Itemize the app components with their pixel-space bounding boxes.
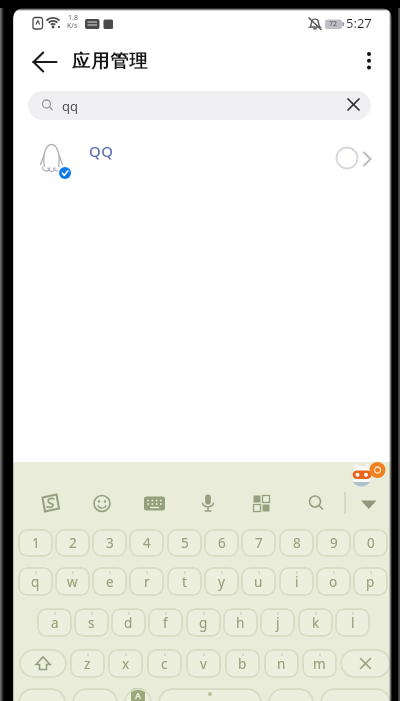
staticText: i bbox=[295, 573, 299, 591]
staticText: 5 bbox=[181, 534, 189, 552]
staticText: v bbox=[200, 655, 207, 673]
button[interactable]: k bbox=[298, 608, 333, 637]
button[interactable]: j bbox=[260, 608, 295, 637]
button[interactable] bbox=[26, 44, 64, 80]
button[interactable]: p bbox=[353, 567, 388, 596]
button[interactable]: t bbox=[167, 567, 202, 596]
button[interactable]: 9 bbox=[316, 529, 351, 557]
button[interactable]: v bbox=[186, 649, 221, 678]
staticText: A bbox=[135, 689, 142, 701]
staticText: 1.8 bbox=[68, 13, 78, 23]
staticText: j bbox=[276, 614, 280, 632]
staticText: e bbox=[106, 573, 114, 591]
button[interactable]: 6 bbox=[204, 529, 239, 557]
button[interactable]: qq bbox=[28, 91, 371, 120]
button[interactable] bbox=[72, 688, 118, 701]
button[interactable] bbox=[35, 490, 63, 517]
staticText: k bbox=[312, 614, 320, 632]
staticText: K/s bbox=[67, 21, 78, 31]
button[interactable]: 2 bbox=[55, 529, 90, 557]
button[interactable]: m bbox=[302, 649, 337, 678]
button[interactable]: a bbox=[37, 608, 72, 637]
button[interactable]: n bbox=[264, 649, 299, 678]
button[interactable]: l bbox=[335, 608, 370, 637]
staticText: l bbox=[351, 614, 355, 632]
button[interactable]: 7 bbox=[241, 529, 276, 557]
staticText: f bbox=[163, 614, 168, 632]
staticText: 1 bbox=[32, 534, 40, 552]
button[interactable]: z bbox=[70, 649, 105, 678]
button[interactable]: f bbox=[148, 608, 183, 637]
staticText: g bbox=[199, 614, 208, 632]
staticText: 0 bbox=[367, 534, 375, 552]
button[interactable]: 1 bbox=[18, 529, 53, 557]
button[interactable]: y bbox=[204, 567, 239, 596]
staticText: 2 bbox=[69, 534, 77, 552]
button[interactable] bbox=[340, 649, 391, 678]
button[interactable] bbox=[336, 147, 376, 169]
staticText: w bbox=[67, 573, 78, 591]
staticText: s bbox=[88, 614, 95, 632]
staticText: t bbox=[182, 573, 187, 591]
staticText: b bbox=[238, 655, 247, 673]
staticText: 应用管理 bbox=[72, 50, 149, 73]
staticText: d bbox=[124, 614, 133, 632]
staticText: z bbox=[84, 655, 91, 673]
button[interactable] bbox=[352, 44, 386, 80]
staticText: 7 bbox=[255, 534, 263, 552]
staticText: a bbox=[51, 614, 59, 632]
button[interactable] bbox=[248, 490, 276, 517]
button[interactable] bbox=[302, 490, 330, 517]
button[interactable] bbox=[268, 688, 314, 701]
button[interactable] bbox=[13, 133, 392, 181]
staticText: o bbox=[329, 573, 338, 591]
button[interactable]: s bbox=[74, 608, 109, 637]
button[interactable]: b bbox=[225, 649, 260, 678]
staticText: p bbox=[366, 573, 375, 591]
button[interactable]: g bbox=[186, 608, 221, 637]
staticText: q bbox=[31, 573, 40, 591]
button[interactable]: 4 bbox=[129, 529, 164, 557]
staticText: QQ bbox=[89, 141, 114, 161]
button[interactable]: 5 bbox=[167, 529, 202, 557]
staticText: 4 bbox=[143, 534, 151, 552]
button[interactable] bbox=[141, 490, 169, 517]
button[interactable] bbox=[18, 688, 66, 701]
button[interactable]: x bbox=[108, 649, 143, 678]
button[interactable] bbox=[320, 688, 391, 701]
button[interactable]: e bbox=[92, 567, 127, 596]
staticText: 72 bbox=[329, 19, 338, 29]
button[interactable] bbox=[341, 92, 367, 118]
button[interactable]: d bbox=[111, 608, 146, 637]
staticText: 5:27 bbox=[346, 14, 372, 32]
button[interactable]: r bbox=[129, 567, 164, 596]
staticText: qq bbox=[62, 97, 78, 115]
button[interactable]: o bbox=[316, 567, 351, 596]
staticText: m bbox=[313, 655, 326, 673]
button[interactable]: h bbox=[223, 608, 258, 637]
button[interactable] bbox=[194, 490, 222, 517]
staticText: x bbox=[122, 655, 130, 673]
button[interactable]: w bbox=[55, 567, 90, 596]
button[interactable]: q bbox=[18, 567, 53, 596]
staticText: c bbox=[161, 655, 168, 673]
staticText: 3 bbox=[106, 534, 114, 552]
staticText: h bbox=[236, 614, 245, 632]
staticText: y bbox=[218, 573, 225, 591]
staticText: 9 bbox=[330, 534, 338, 552]
button[interactable] bbox=[158, 688, 262, 701]
staticText: u bbox=[254, 573, 263, 591]
staticText: 6 bbox=[218, 534, 226, 552]
staticText: n bbox=[277, 655, 286, 673]
button[interactable]: 0 bbox=[353, 529, 388, 557]
button[interactable] bbox=[88, 490, 116, 517]
button[interactable]: u bbox=[241, 567, 276, 596]
button[interactable]: 3 bbox=[92, 529, 127, 557]
button[interactable] bbox=[19, 649, 67, 678]
button[interactable]: A bbox=[124, 688, 152, 701]
staticText: r bbox=[144, 573, 150, 591]
button[interactable] bbox=[355, 490, 383, 517]
button[interactable]: i bbox=[279, 567, 314, 596]
button[interactable]: c bbox=[147, 649, 182, 678]
button[interactable]: 8 bbox=[279, 529, 314, 557]
